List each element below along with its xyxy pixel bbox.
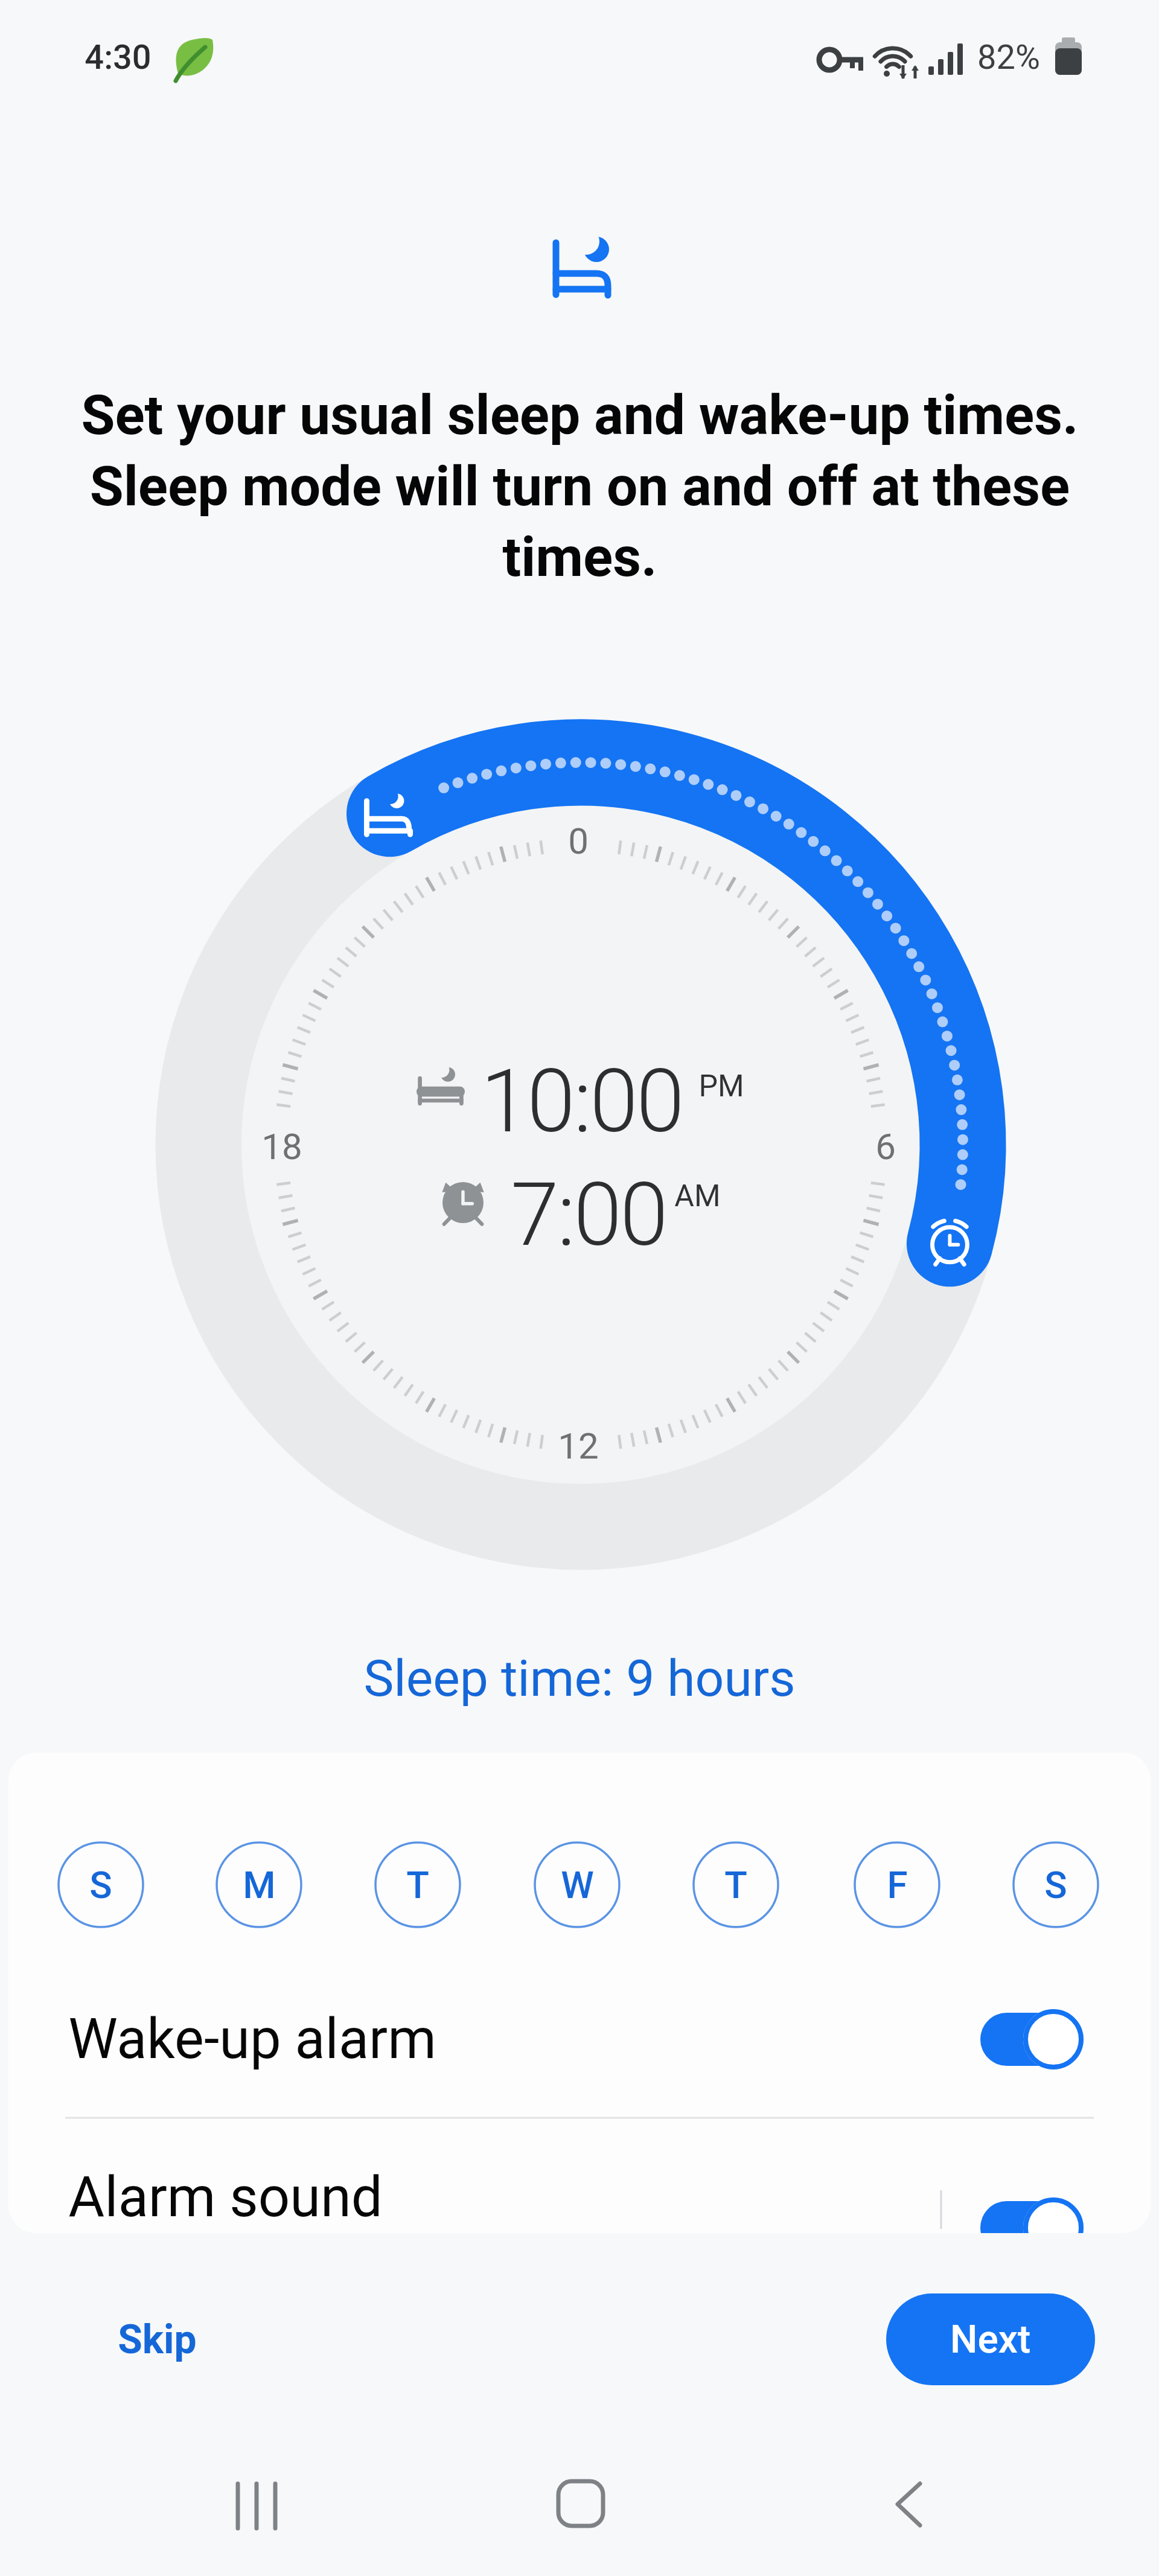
button[interactable]: M	[223, 1849, 295, 1921]
button[interactable]	[8, 2146, 932, 2233]
button[interactable]	[980, 2201, 1084, 2233]
staticText: Sleep time: 9 hours	[363, 1649, 796, 1708]
staticText: 4:30	[85, 37, 152, 77]
button[interactable]: S	[1020, 1849, 1092, 1921]
button[interactable]	[980, 2013, 1084, 2066]
button[interactable]	[199, 2462, 314, 2548]
staticText: AM	[674, 1178, 721, 1212]
button[interactable]: W	[541, 1849, 613, 1921]
staticText: Wake-up alarm	[68, 2007, 436, 2072]
staticText: PM	[698, 1069, 744, 1102]
button[interactable]: F	[861, 1849, 933, 1921]
button[interactable]: T	[700, 1849, 772, 1921]
staticText: 7:00	[511, 1164, 666, 1248]
staticText: T	[724, 1863, 747, 1907]
staticText: 0	[568, 820, 589, 862]
staticText: 82%	[977, 37, 1040, 77]
staticText: 6	[875, 1125, 896, 1168]
staticText: 12	[558, 1425, 599, 1467]
button[interactable]: Next	[886, 2293, 1095, 2385]
staticText: T	[406, 1863, 429, 1907]
staticText: Alarm sound	[68, 2165, 383, 2230]
button[interactable]	[857, 2462, 960, 2548]
button[interactable]: Skip	[91, 2303, 223, 2376]
staticText: F	[887, 1863, 908, 1907]
button[interactable]	[8, 1988, 1151, 2097]
staticText: W	[561, 1863, 594, 1907]
staticText: M	[243, 1863, 276, 1907]
staticText: 18	[261, 1125, 302, 1168]
button[interactable]	[529, 2462, 632, 2548]
button[interactable]: T	[382, 1849, 454, 1921]
staticText: S	[1044, 1863, 1067, 1907]
staticText: Set your usual sleep and wake-up times. …	[81, 383, 1079, 589]
staticText: Next	[950, 2317, 1031, 2362]
staticText: S	[89, 1863, 112, 1907]
staticText: Skip	[118, 2316, 197, 2363]
staticText: 10:00	[481, 1050, 683, 1135]
button[interactable]: S	[65, 1849, 137, 1921]
